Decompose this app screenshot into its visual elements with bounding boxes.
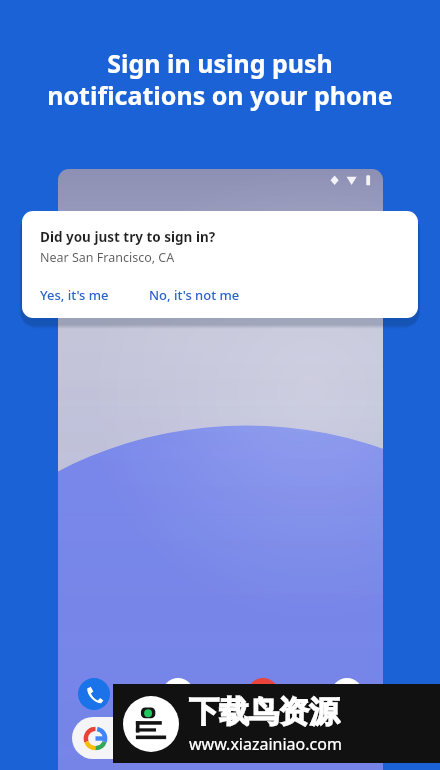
button[interactable]: Did you just try to sign in? xyxy=(22,211,418,318)
button[interactable]: No, it's not me xyxy=(143,282,246,308)
button[interactable]: App xyxy=(162,678,194,710)
staticText: 下载鸟资源 xyxy=(189,693,339,731)
staticText: Yes, it's me xyxy=(40,286,109,304)
staticText: Near San Francisco, CA xyxy=(40,249,175,266)
button[interactable]: App xyxy=(78,678,110,710)
staticText: No, it's not me xyxy=(149,286,240,304)
staticText: Sign in using push notifications on your… xyxy=(24,46,416,112)
staticText: www.xiazainiao.com xyxy=(189,733,342,755)
button[interactable]: App xyxy=(247,678,279,710)
button[interactable]: Yes, it's me xyxy=(34,282,115,308)
button[interactable]: Google Search xyxy=(72,717,369,759)
staticText: Did you just try to sign in? xyxy=(40,228,216,246)
button[interactable]: App xyxy=(331,678,363,710)
